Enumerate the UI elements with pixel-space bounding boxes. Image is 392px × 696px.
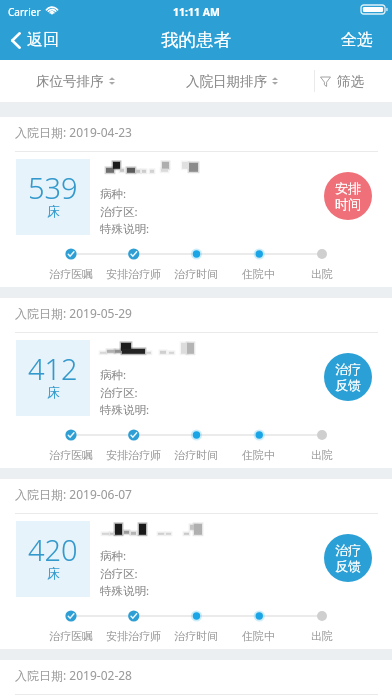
- staticText: 住院中: [242, 629, 275, 643]
- staticText: 539: [28, 168, 78, 207]
- staticText: 入院日期排序: [186, 73, 267, 90]
- button[interactable]: 全选: [325, 20, 392, 60]
- button[interactable]: 筛选: [315, 60, 392, 102]
- staticText: 治疗医嘱: [49, 629, 93, 643]
- staticText: 床: [47, 203, 60, 219]
- staticText: 病种:: [100, 367, 127, 383]
- staticText: Carrier: [8, 5, 41, 19]
- button[interactable]: 入院日期排序: [186, 60, 278, 102]
- staticText: 出院: [311, 448, 333, 462]
- staticText: 住院中: [242, 448, 275, 462]
- staticText: 412: [28, 349, 78, 388]
- button[interactable]: 入院日期: 2019-04-23: [0, 117, 392, 287]
- staticText: 出院: [311, 267, 333, 281]
- staticText: 特殊说明:: [100, 402, 150, 418]
- button[interactable]: 治疗反馈: [324, 353, 372, 401]
- staticText: 治疗 反馈: [335, 361, 361, 394]
- staticText: 特殊说明:: [100, 583, 150, 599]
- staticText: 安排 时间: [335, 180, 361, 213]
- staticText: 我的患者: [161, 29, 231, 51]
- staticText: 治疗区:: [100, 566, 138, 582]
- staticText: 住院中: [242, 267, 275, 281]
- staticText: 入院日期: 2019-05-29: [15, 305, 132, 321]
- staticText: 返回: [27, 30, 59, 50]
- staticText: 治疗区:: [100, 385, 138, 401]
- button[interactable]: 入院日期: 2019-05-29: [0, 298, 392, 468]
- staticText: 床: [47, 384, 60, 400]
- staticText: 治疗区:: [100, 204, 138, 220]
- staticText: 入院日期: 2019-04-23: [15, 124, 132, 140]
- button[interactable]: 治疗反馈: [324, 534, 372, 582]
- staticText: 420: [28, 530, 78, 569]
- staticText: 特殊说明:: [100, 221, 150, 237]
- staticText: 入院日期: 2019-06-07: [15, 486, 132, 502]
- staticText: 安排治疗师: [106, 267, 161, 281]
- button[interactable]: 返回: [0, 20, 71, 60]
- staticText: 治疗 反馈: [335, 542, 361, 575]
- staticText: 治疗医嘱: [49, 448, 93, 462]
- staticText: 病种:: [100, 186, 127, 202]
- staticText: 床: [47, 565, 60, 581]
- staticText: 11:11 AM: [173, 5, 220, 19]
- staticText: 安排治疗师: [106, 448, 161, 462]
- button[interactable]: 床位号排序: [36, 60, 115, 102]
- staticText: 治疗时间: [174, 629, 218, 643]
- staticText: 全选: [341, 30, 373, 50]
- button[interactable]: 入院日期: 2019-06-07: [0, 479, 392, 649]
- staticText: 治疗时间: [174, 267, 218, 281]
- staticText: 出院: [311, 629, 333, 643]
- staticText: 入院日期: 2019-02-28: [15, 667, 132, 683]
- staticText: 床位号排序: [36, 73, 104, 90]
- button[interactable]: 安排时间: [324, 172, 372, 220]
- staticText: 安排治疗师: [106, 629, 161, 643]
- staticText: 病种:: [100, 548, 127, 564]
- staticText: 治疗医嘱: [49, 267, 93, 281]
- staticText: 筛选: [337, 73, 364, 90]
- staticText: 治疗时间: [174, 448, 218, 462]
